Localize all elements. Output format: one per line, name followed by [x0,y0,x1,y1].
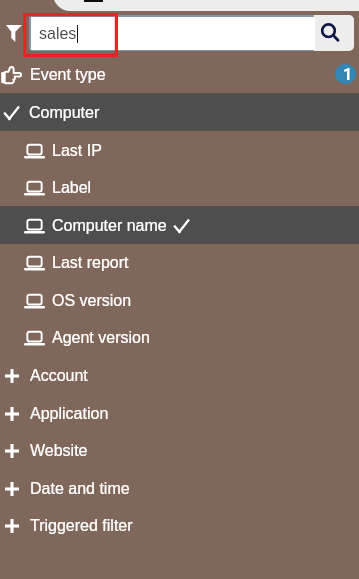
button[interactable]: Label [0,168,359,206]
staticText: 1 [343,65,353,84]
button[interactable]: Event type [0,55,359,93]
staticText: Agent version [52,329,150,347]
staticText: Date and time [30,480,130,498]
staticText: Computer name [52,217,167,235]
button[interactable]: Triggered filter [0,506,359,544]
staticText: Website [30,442,88,460]
button[interactable]: Website [0,431,359,469]
button[interactable]: OS version [0,281,359,319]
button[interactable]: Filter [6,25,22,42]
button[interactable]: Last report [0,243,359,281]
staticText: Last IP [52,142,102,160]
button[interactable]: Account [0,356,359,394]
button[interactable]: Agent version [0,318,359,356]
button[interactable]: Date and time [0,469,359,507]
staticText: sales [39,25,77,43]
staticText: Triggered filter [30,517,133,535]
button[interactable]: sales [29,15,354,51]
button[interactable]: Search [314,15,354,51]
staticText: Application [30,405,109,423]
staticText: Account [30,367,88,385]
staticText: Label [52,179,92,197]
button[interactable]: Application [0,394,359,432]
staticText: Event type [30,66,106,84]
staticText: Last report [52,254,129,272]
staticText: OS version [52,292,132,310]
button[interactable]: Last IP [0,131,359,169]
button[interactable]: Computer [0,93,359,131]
staticText: Computer [29,104,100,122]
button[interactable]: Computer name [0,206,359,244]
